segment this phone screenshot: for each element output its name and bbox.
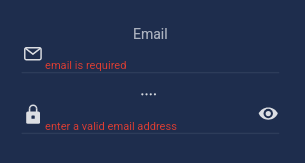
- button[interactable]: Password field: [22, 85, 254, 135]
- staticText: enter a valid email address: [45, 120, 177, 133]
- staticText: Email: [133, 26, 168, 42]
- button[interactable]: Email field: [22, 24, 280, 74]
- staticText: email is required: [45, 59, 127, 72]
- button[interactable]: Show password: [257, 103, 279, 124]
